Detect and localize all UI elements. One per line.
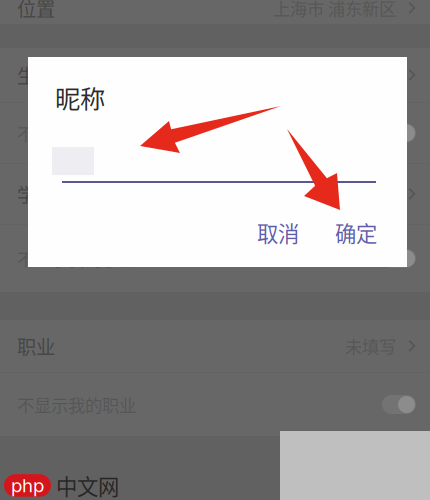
staticText: php [11,474,44,497]
button[interactable]: 不显示我的学校 [0,225,430,292]
staticText: 不显示我的生日 [17,120,136,146]
staticText: 职业 [17,332,55,360]
button[interactable]: 位置 [0,0,430,24]
staticText: 不显示我的学校 [17,246,136,271]
button[interactable]: 职业 [0,320,430,372]
button[interactable]: 学校 [0,164,430,224]
button[interactable]: 不显示我的职业 [0,373,430,436]
staticText: 位置 [17,0,55,22]
staticText: 未填写 [345,333,396,359]
button[interactable]: 确定 [335,217,377,248]
staticText: 昵称 [55,79,105,116]
button[interactable]: 取消 [257,217,299,248]
button[interactable]: 不显示我的生日 [0,103,430,163]
button[interactable]: 生日 [0,48,430,102]
staticText: 学校 [17,180,55,208]
staticText: 不显示我的职业 [17,392,136,417]
staticText: 确定 [335,217,377,248]
staticText: 生日 [17,61,55,89]
staticText: 中文网 [56,470,119,500]
staticText: 上海市 浦东新区 [273,0,396,21]
staticText: 取消 [257,217,299,248]
